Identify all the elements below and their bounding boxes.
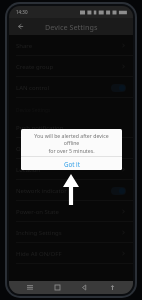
staticText: Inching Settings — [16, 229, 62, 237]
button[interactable]: Offline notification — [9, 138, 133, 159]
staticText: Hide All ON/OFF — [16, 250, 62, 258]
button[interactable]: Back — [78, 281, 91, 294]
button[interactable]: Push notification — [9, 117, 133, 138]
staticText: Device Settings — [45, 22, 98, 32]
button[interactable]: Toggle LAN control — [111, 84, 126, 92]
staticText: Push notification — [16, 124, 64, 132]
button[interactable]: Home — [51, 281, 64, 294]
staticText: LAN control — [16, 84, 50, 92]
staticText: Share — [16, 42, 33, 50]
staticText: 14:30 — [16, 9, 28, 15]
staticText: Offline notification — [16, 145, 69, 153]
button[interactable]: Keyboard — [106, 281, 119, 294]
button[interactable]: Power-on State — [9, 201, 133, 222]
staticText: Location — [16, 166, 41, 174]
button[interactable]: Toggle Network indicator — [111, 187, 126, 195]
staticText: Got it — [64, 160, 80, 168]
button[interactable]: Got it — [21, 157, 122, 170]
button[interactable]: Location — [9, 159, 133, 180]
button[interactable]: Recents — [23, 281, 36, 294]
button[interactable]: Network indicator — [9, 180, 133, 201]
staticText: You will be alerted after device offline… — [27, 132, 116, 154]
button[interactable]: Back — [14, 20, 27, 33]
staticText: Network indicator — [16, 187, 67, 195]
staticText: Power-on State — [16, 208, 59, 216]
button[interactable]: LAN control — [9, 77, 133, 98]
staticText: Create group — [16, 63, 54, 71]
